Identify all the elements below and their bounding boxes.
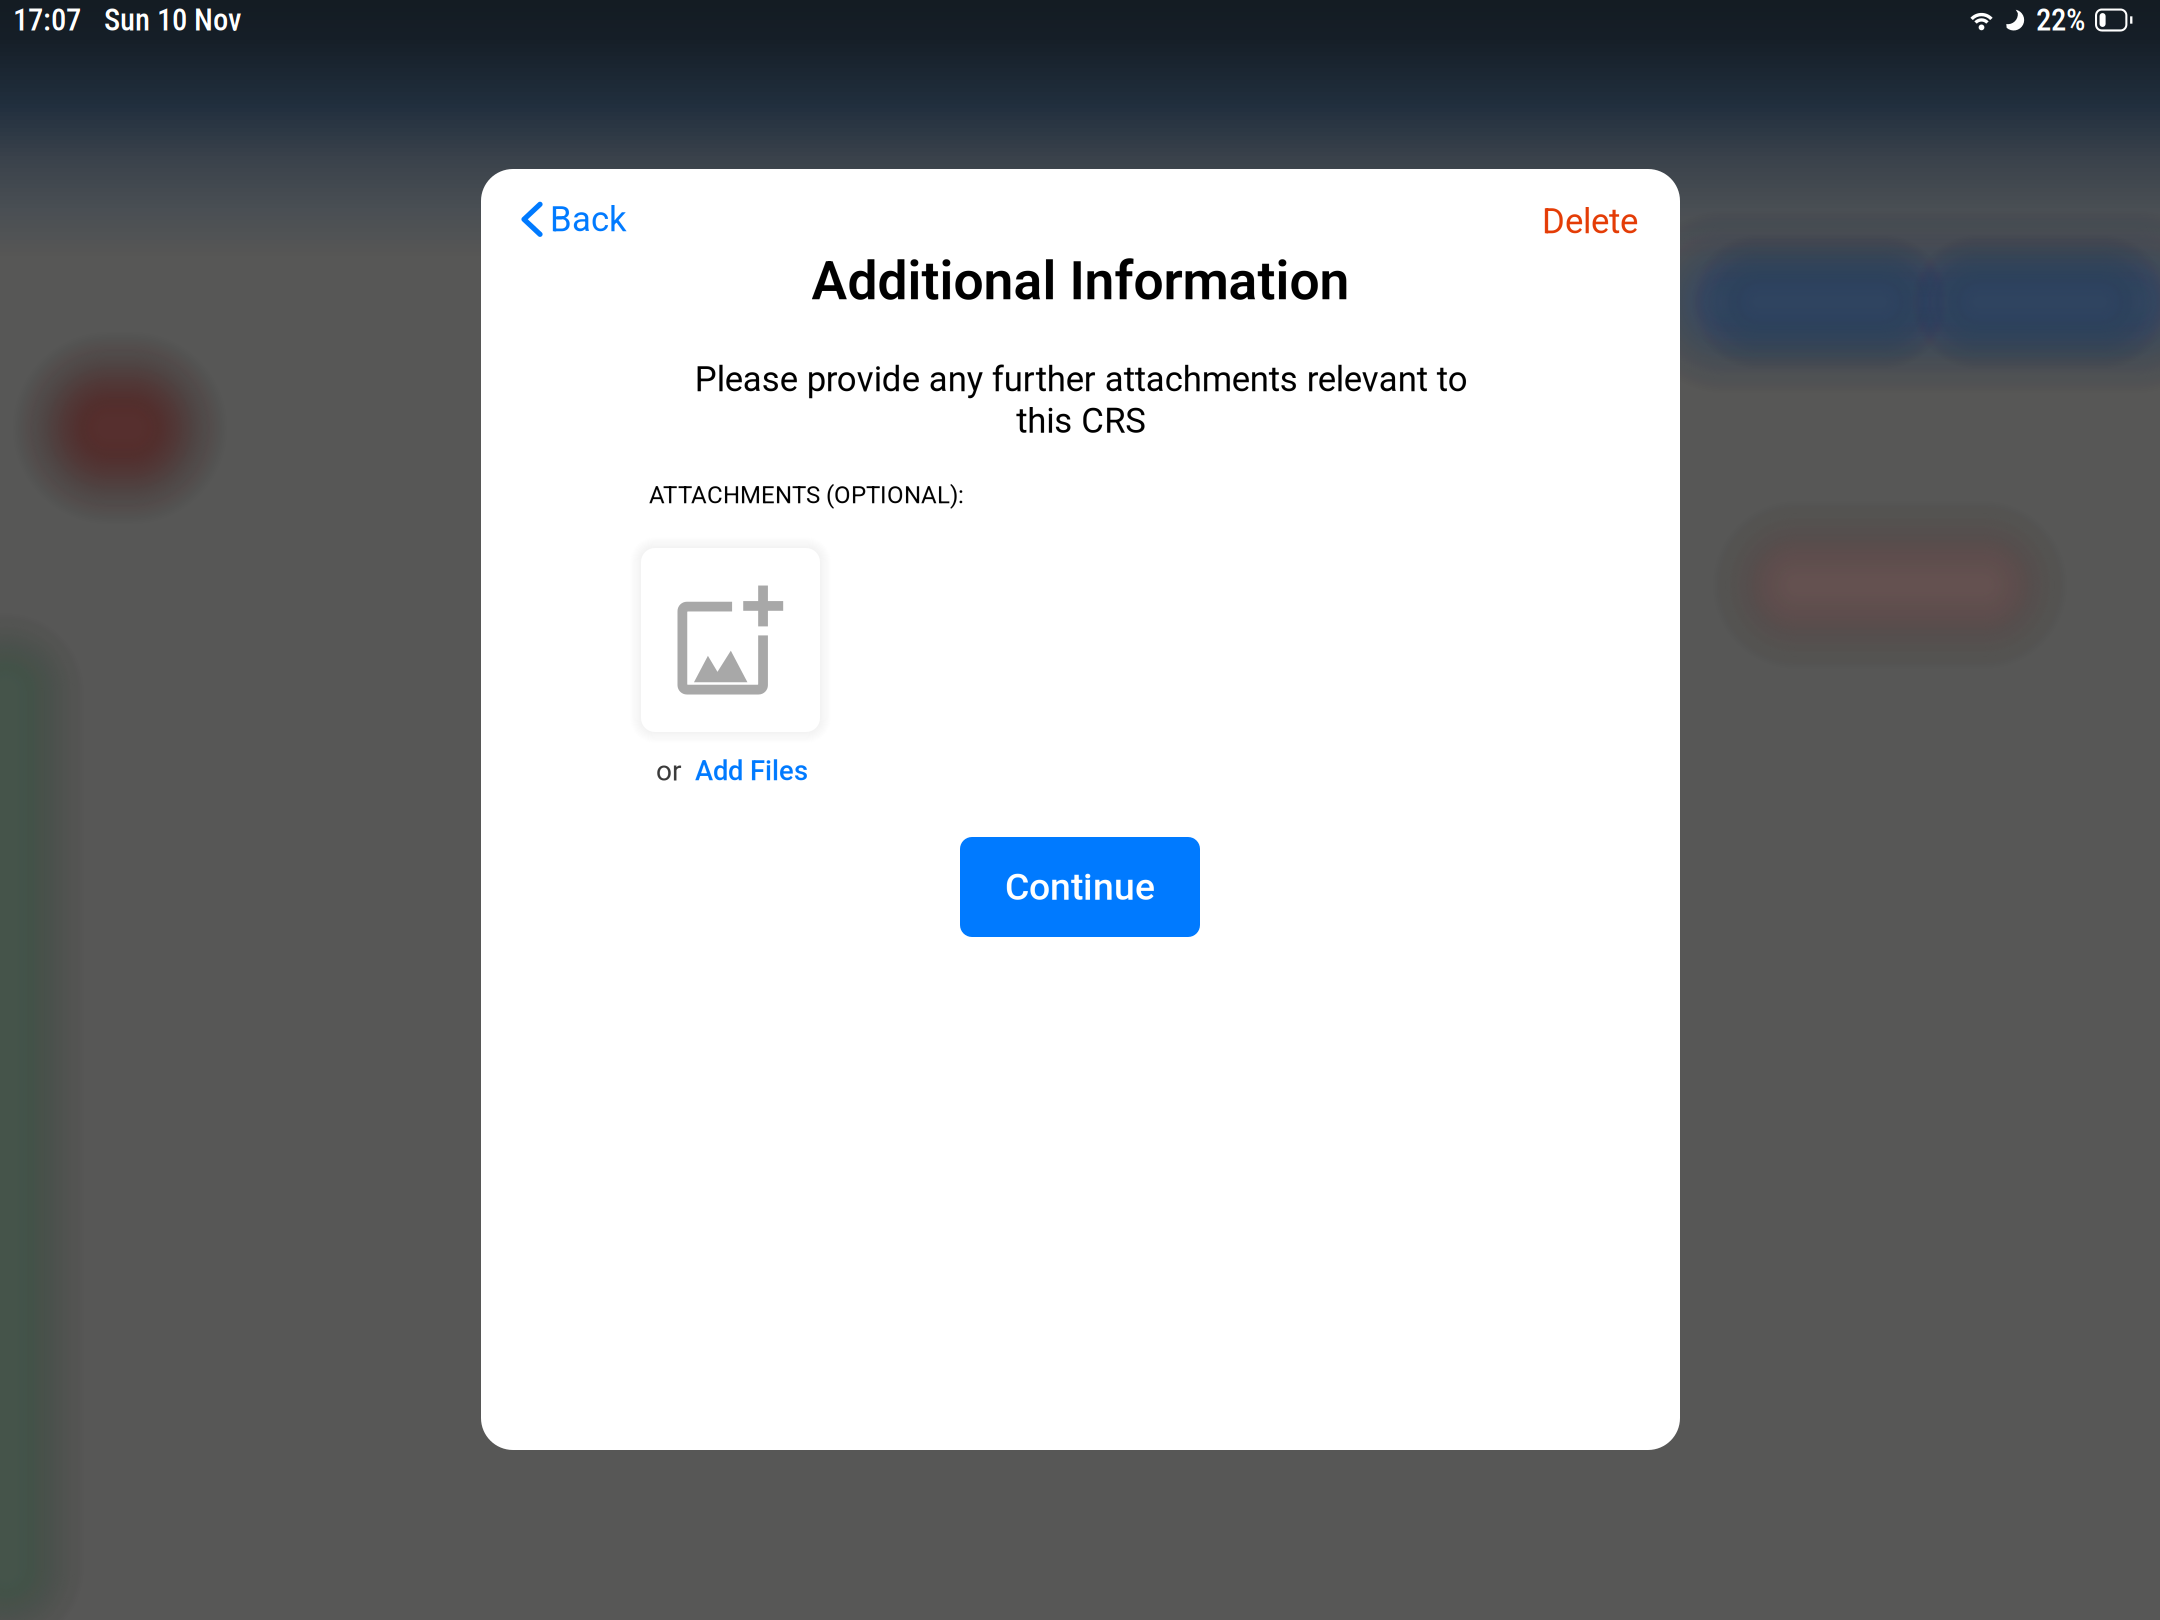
button[interactable]: Delete [1522,191,1658,252]
staticText: Add Files [695,755,808,787]
staticText: ATTACHMENTS (OPTIONAL): [649,481,964,509]
staticText: Back [550,199,627,240]
staticText: 17:07 [13,2,81,38]
button[interactable]: Back [481,189,643,250]
button[interactable]: Add Files [681,747,808,795]
button[interactable]: Add photo [641,548,820,732]
staticText: Additional Information [811,250,1349,312]
staticText: or [656,755,681,787]
staticText: Sun 10 Nov [104,2,241,38]
staticText: Please provide any further attachments r… [694,359,1467,441]
staticText: Continue [1005,865,1155,909]
staticText: 22% [2036,2,2085,38]
staticText: Delete [1542,201,1638,242]
button[interactable]: Continue [960,837,1200,937]
